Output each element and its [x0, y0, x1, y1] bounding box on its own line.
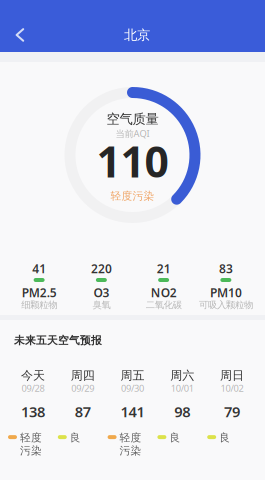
staticText: 二氧化碳 — [146, 299, 182, 311]
staticText: NO2 — [151, 284, 177, 300]
staticText: PM2.5 — [22, 284, 57, 300]
staticText: PM10 — [210, 284, 242, 300]
staticText: 周四 — [71, 368, 95, 383]
staticText: O3 — [93, 284, 109, 300]
staticText: 09/28 — [21, 382, 44, 394]
staticText: 83 — [219, 260, 233, 276]
staticText: 轻度污染 — [120, 431, 142, 457]
staticText: 细颗粒物 — [21, 299, 57, 311]
staticText: 21 — [157, 260, 171, 276]
staticText: 轻度污染 — [110, 189, 154, 202]
staticText: 98 — [174, 402, 190, 421]
staticText: 臭氧 — [92, 299, 110, 311]
staticText: 空气质量 — [106, 111, 158, 127]
staticText: 09/29 — [71, 382, 94, 394]
staticText: 87 — [75, 402, 91, 421]
staticText: 北京 — [124, 27, 150, 43]
staticText: 周五 — [120, 368, 144, 383]
button[interactable]: Back — [0, 7, 39, 45]
staticText: 轻度污染 — [20, 431, 42, 457]
staticText: 可吸入颗粒物 — [199, 299, 253, 311]
staticText: 良 — [219, 431, 230, 444]
staticText: 141 — [120, 402, 144, 421]
staticText: 10/02 — [221, 382, 244, 394]
staticText: 良 — [169, 431, 180, 444]
staticText: 09/30 — [121, 382, 144, 394]
staticText: 良 — [70, 431, 81, 444]
staticText: 未来五天空气预报 — [14, 334, 102, 347]
staticText: 138 — [21, 402, 45, 421]
staticText: 41 — [32, 260, 46, 276]
staticText: 79 — [224, 402, 240, 421]
staticText: 周日 — [220, 368, 244, 383]
staticText: 110 — [96, 133, 168, 189]
staticText: 今天 — [21, 368, 45, 383]
staticText: 10/01 — [171, 382, 194, 394]
staticText: 周六 — [170, 368, 194, 383]
staticText: 当前AQI — [115, 127, 149, 140]
staticText: 220 — [91, 260, 112, 276]
